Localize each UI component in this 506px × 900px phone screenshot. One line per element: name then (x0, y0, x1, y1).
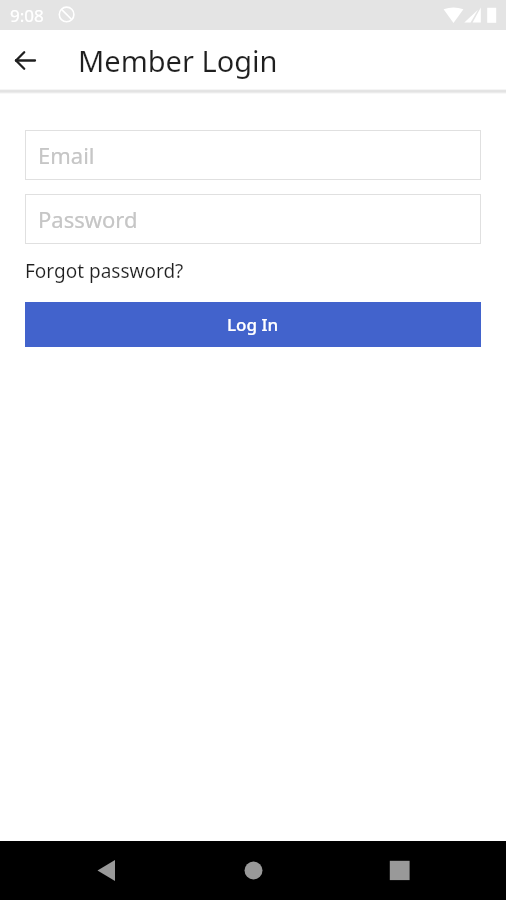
staticText: Log In (227, 313, 279, 336)
staticText: Forgot password? (25, 258, 184, 284)
staticText: Password (38, 204, 138, 234)
button[interactable]: Password (25, 194, 481, 244)
button[interactable]: Log In (25, 302, 481, 347)
button[interactable]: Back (2, 37, 49, 84)
button[interactable]: Forgot password? (25, 258, 184, 284)
staticText: Email (38, 140, 95, 170)
button[interactable]: Email (25, 130, 481, 180)
staticText: 9:08 (10, 4, 44, 27)
staticText: Member Login (78, 41, 278, 80)
